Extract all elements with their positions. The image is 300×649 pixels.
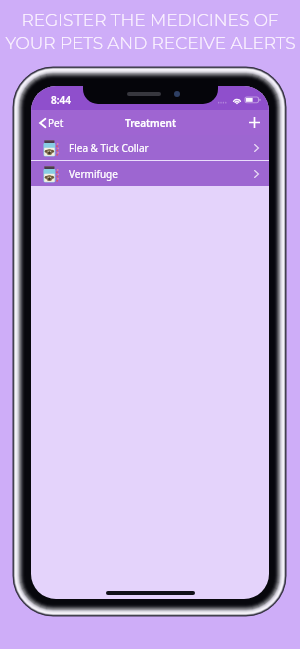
button[interactable]: Vermifuge <box>31 161 269 186</box>
button[interactable]: Add <box>240 111 269 134</box>
button[interactable]: Flea & Tick Collar <box>31 135 269 160</box>
staticText: Vermifuge <box>69 167 118 181</box>
button[interactable]: Pet <box>31 111 72 135</box>
staticText: Treatment <box>125 116 176 130</box>
staticText: 8:44 <box>51 93 71 107</box>
staticText: Pet <box>48 116 64 130</box>
staticText: Flea & Tick Collar <box>69 141 149 155</box>
staticText: REGISTER THE MEDICINES OF <box>21 10 279 31</box>
staticText: YOUR PETS AND RECEIVE ALERTS <box>5 33 296 54</box>
